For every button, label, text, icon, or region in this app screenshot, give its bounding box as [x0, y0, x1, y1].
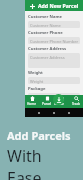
button[interactable]: Select	[28, 109, 80, 116]
staticText: Create Parcel	[54, 102, 68, 106]
staticText: Add Parcels	[7, 128, 71, 143]
staticText: Customer Address	[30, 55, 65, 60]
button[interactable]: Home	[25, 95, 39, 108]
staticText: With Ease.	[7, 145, 83, 180]
staticText: Customer Phone Number	[30, 39, 79, 44]
button[interactable]: Weight	[28, 77, 80, 84]
staticText: Parcel Type	[28, 102, 52, 108]
staticText: Add New Parcel	[38, 2, 79, 9]
staticText: Customer Phone Number	[28, 30, 80, 36]
button[interactable]: Parcel	[40, 95, 54, 108]
button[interactable]: Select Package	[28, 93, 80, 100]
staticText: Customer Name	[30, 23, 61, 28]
button[interactable]: Add	[28, 2, 36, 10]
button[interactable]: Customer Name	[28, 21, 80, 28]
staticText: Weight	[28, 70, 43, 76]
staticText: Customer Address	[28, 46, 67, 52]
staticText: Weight	[30, 79, 44, 84]
staticText: Package	[28, 86, 46, 92]
button[interactable]: Create Parcel	[53, 94, 64, 105]
staticText: Track	[72, 102, 80, 106]
staticText: Home	[27, 102, 37, 106]
staticText: Select	[30, 111, 42, 116]
staticText: Customer Name	[28, 14, 62, 20]
button[interactable]: Track	[69, 95, 83, 108]
button[interactable]: Customer Address	[28, 53, 80, 68]
button[interactable]: Create Parcel	[54, 95, 68, 108]
staticText: Parcel	[42, 102, 52, 106]
button[interactable]: Customer Phone Number	[28, 37, 80, 44]
staticText: Select Package	[30, 95, 58, 100]
